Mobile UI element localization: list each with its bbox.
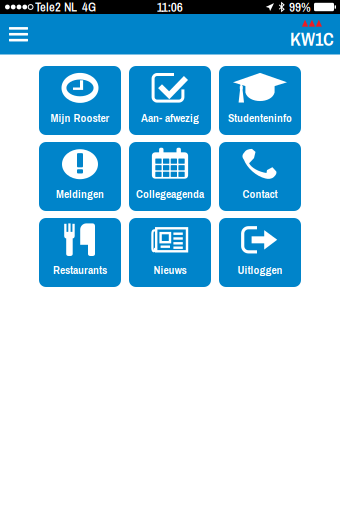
staticText: Tele2 NL [35,0,77,16]
staticText: Studenteninfo [228,110,292,125]
staticText: Restaurants [53,262,107,277]
button[interactable]: Nieuws [129,218,211,287]
button[interactable]: Menu [0,15,42,53]
staticText: Mijn Rooster [50,110,109,125]
staticText: Collegeagenda [136,186,204,201]
staticText: 4G [82,0,96,16]
button[interactable]: Contact [219,142,301,211]
button[interactable]: Collegeagenda [129,142,211,211]
button[interactable]: Meldingen [39,142,121,211]
button[interactable]: Aan- afwezig [129,66,211,135]
staticText: Uitloggen [237,262,282,277]
staticText: KW1C [290,27,334,51]
button[interactable]: Uitloggen [219,218,301,287]
staticText: 11:06 [157,0,183,16]
staticText: 99% [289,0,311,16]
staticText: Contact [242,186,277,201]
staticText: Meldingen [56,186,104,201]
staticText: Aan- afwezig [141,110,199,125]
button[interactable]: Mijn Rooster [39,66,121,135]
button[interactable]: Restaurants [39,218,121,287]
button[interactable]: Studenteninfo [219,66,301,135]
staticText: Nieuws [153,262,186,277]
